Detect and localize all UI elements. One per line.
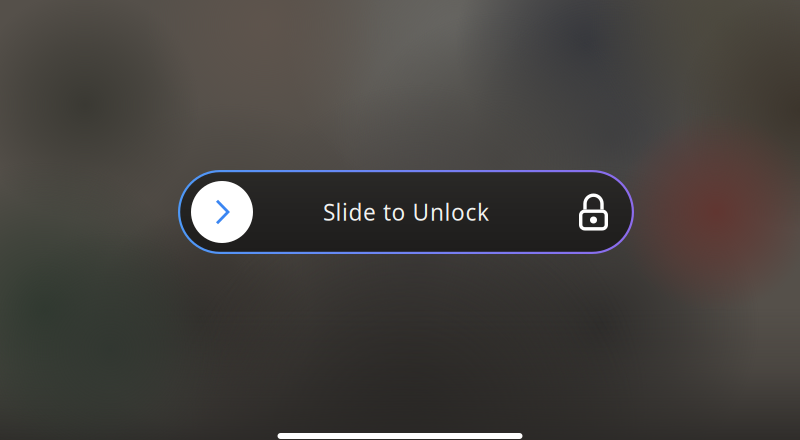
- button[interactable]: Slide to Unlock: [178, 170, 634, 254]
- staticText: Slide to Unlock: [323, 197, 489, 227]
